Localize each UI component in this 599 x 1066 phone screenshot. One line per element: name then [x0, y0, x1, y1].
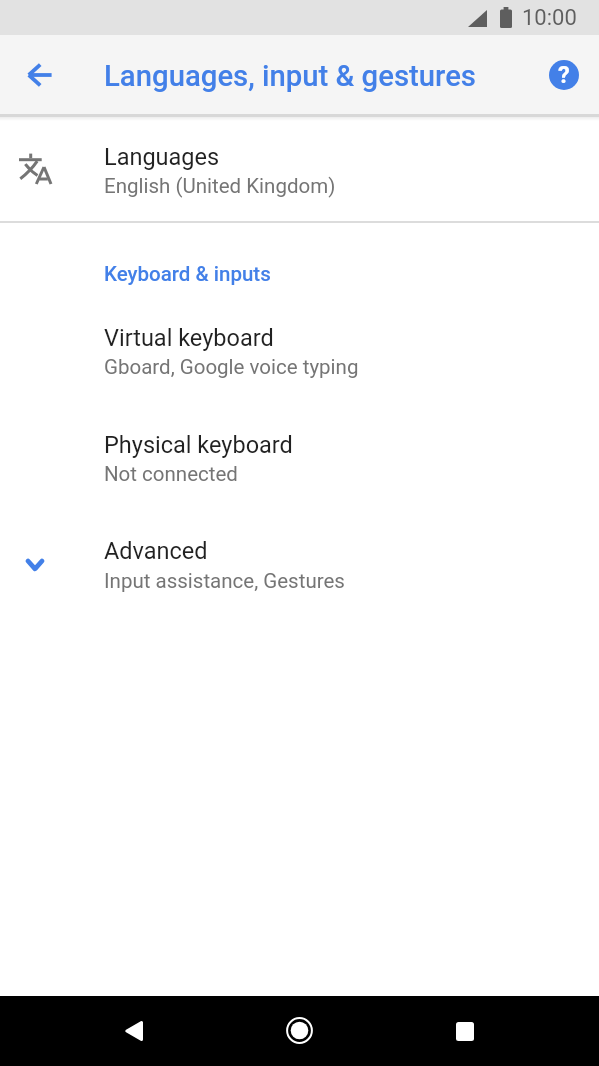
staticText: ?: [558, 61, 570, 89]
staticText: 10:00: [522, 5, 577, 31]
staticText: Languages: [104, 143, 220, 171]
staticText: Keyboard & inputs: [104, 262, 271, 286]
staticText: English (United Kingdom): [104, 174, 336, 198]
button[interactable]: Virtual keyboard: [0, 303, 599, 409]
staticText: Virtual keyboard: [104, 324, 274, 352]
staticText: Gboard, Google voice typing: [104, 355, 359, 379]
button[interactable]: ?: [549, 60, 579, 90]
button[interactable]: [275, 1006, 323, 1054]
staticText: Advanced: [104, 537, 208, 565]
button[interactable]: Advanced: [0, 516, 599, 622]
button[interactable]: Physical keyboard: [0, 410, 599, 516]
staticText: Input assistance, Gestures: [104, 569, 345, 593]
button[interactable]: [16, 51, 64, 99]
staticText: Languages, input & gestures: [104, 59, 477, 93]
staticText: Physical keyboard: [104, 431, 293, 459]
staticText: Not connected: [104, 462, 238, 486]
button[interactable]: [441, 1007, 489, 1055]
button[interactable]: Languages: [0, 115, 599, 221]
button[interactable]: [110, 1007, 158, 1055]
